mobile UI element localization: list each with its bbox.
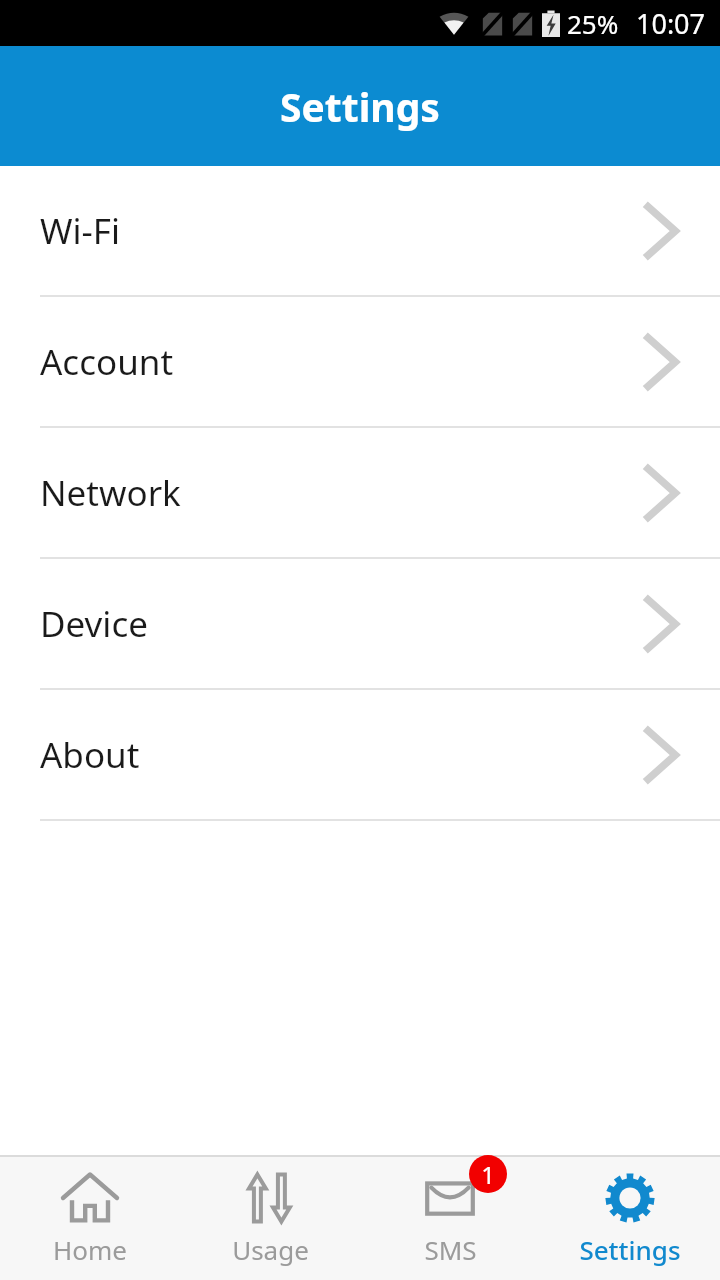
button[interactable]: About bbox=[0, 690, 720, 819]
button[interactable]: Usage bbox=[180, 1157, 360, 1280]
staticText: Home bbox=[53, 1232, 127, 1267]
button[interactable]: Account bbox=[0, 297, 720, 426]
button[interactable]: Settings bbox=[540, 1157, 720, 1280]
button[interactable]: Home bbox=[0, 1157, 180, 1280]
button[interactable]: Device bbox=[0, 559, 720, 688]
staticText: 10:07 bbox=[636, 5, 706, 42]
staticText: 25% bbox=[567, 6, 619, 41]
staticText: About bbox=[40, 731, 644, 779]
staticText: SMS bbox=[424, 1232, 477, 1267]
button[interactable]: SMS bbox=[360, 1157, 540, 1280]
staticText: 1 bbox=[481, 1158, 495, 1191]
staticText: Account bbox=[40, 338, 644, 386]
staticText: Usage bbox=[232, 1232, 309, 1267]
button[interactable]: Network bbox=[0, 428, 720, 557]
staticText: Device bbox=[40, 600, 644, 648]
button[interactable]: Wi-Fi bbox=[0, 166, 720, 295]
staticText: Network bbox=[40, 469, 644, 517]
staticText: Settings bbox=[280, 80, 440, 133]
staticText: Wi-Fi bbox=[40, 207, 644, 255]
staticText: Settings bbox=[579, 1232, 681, 1267]
